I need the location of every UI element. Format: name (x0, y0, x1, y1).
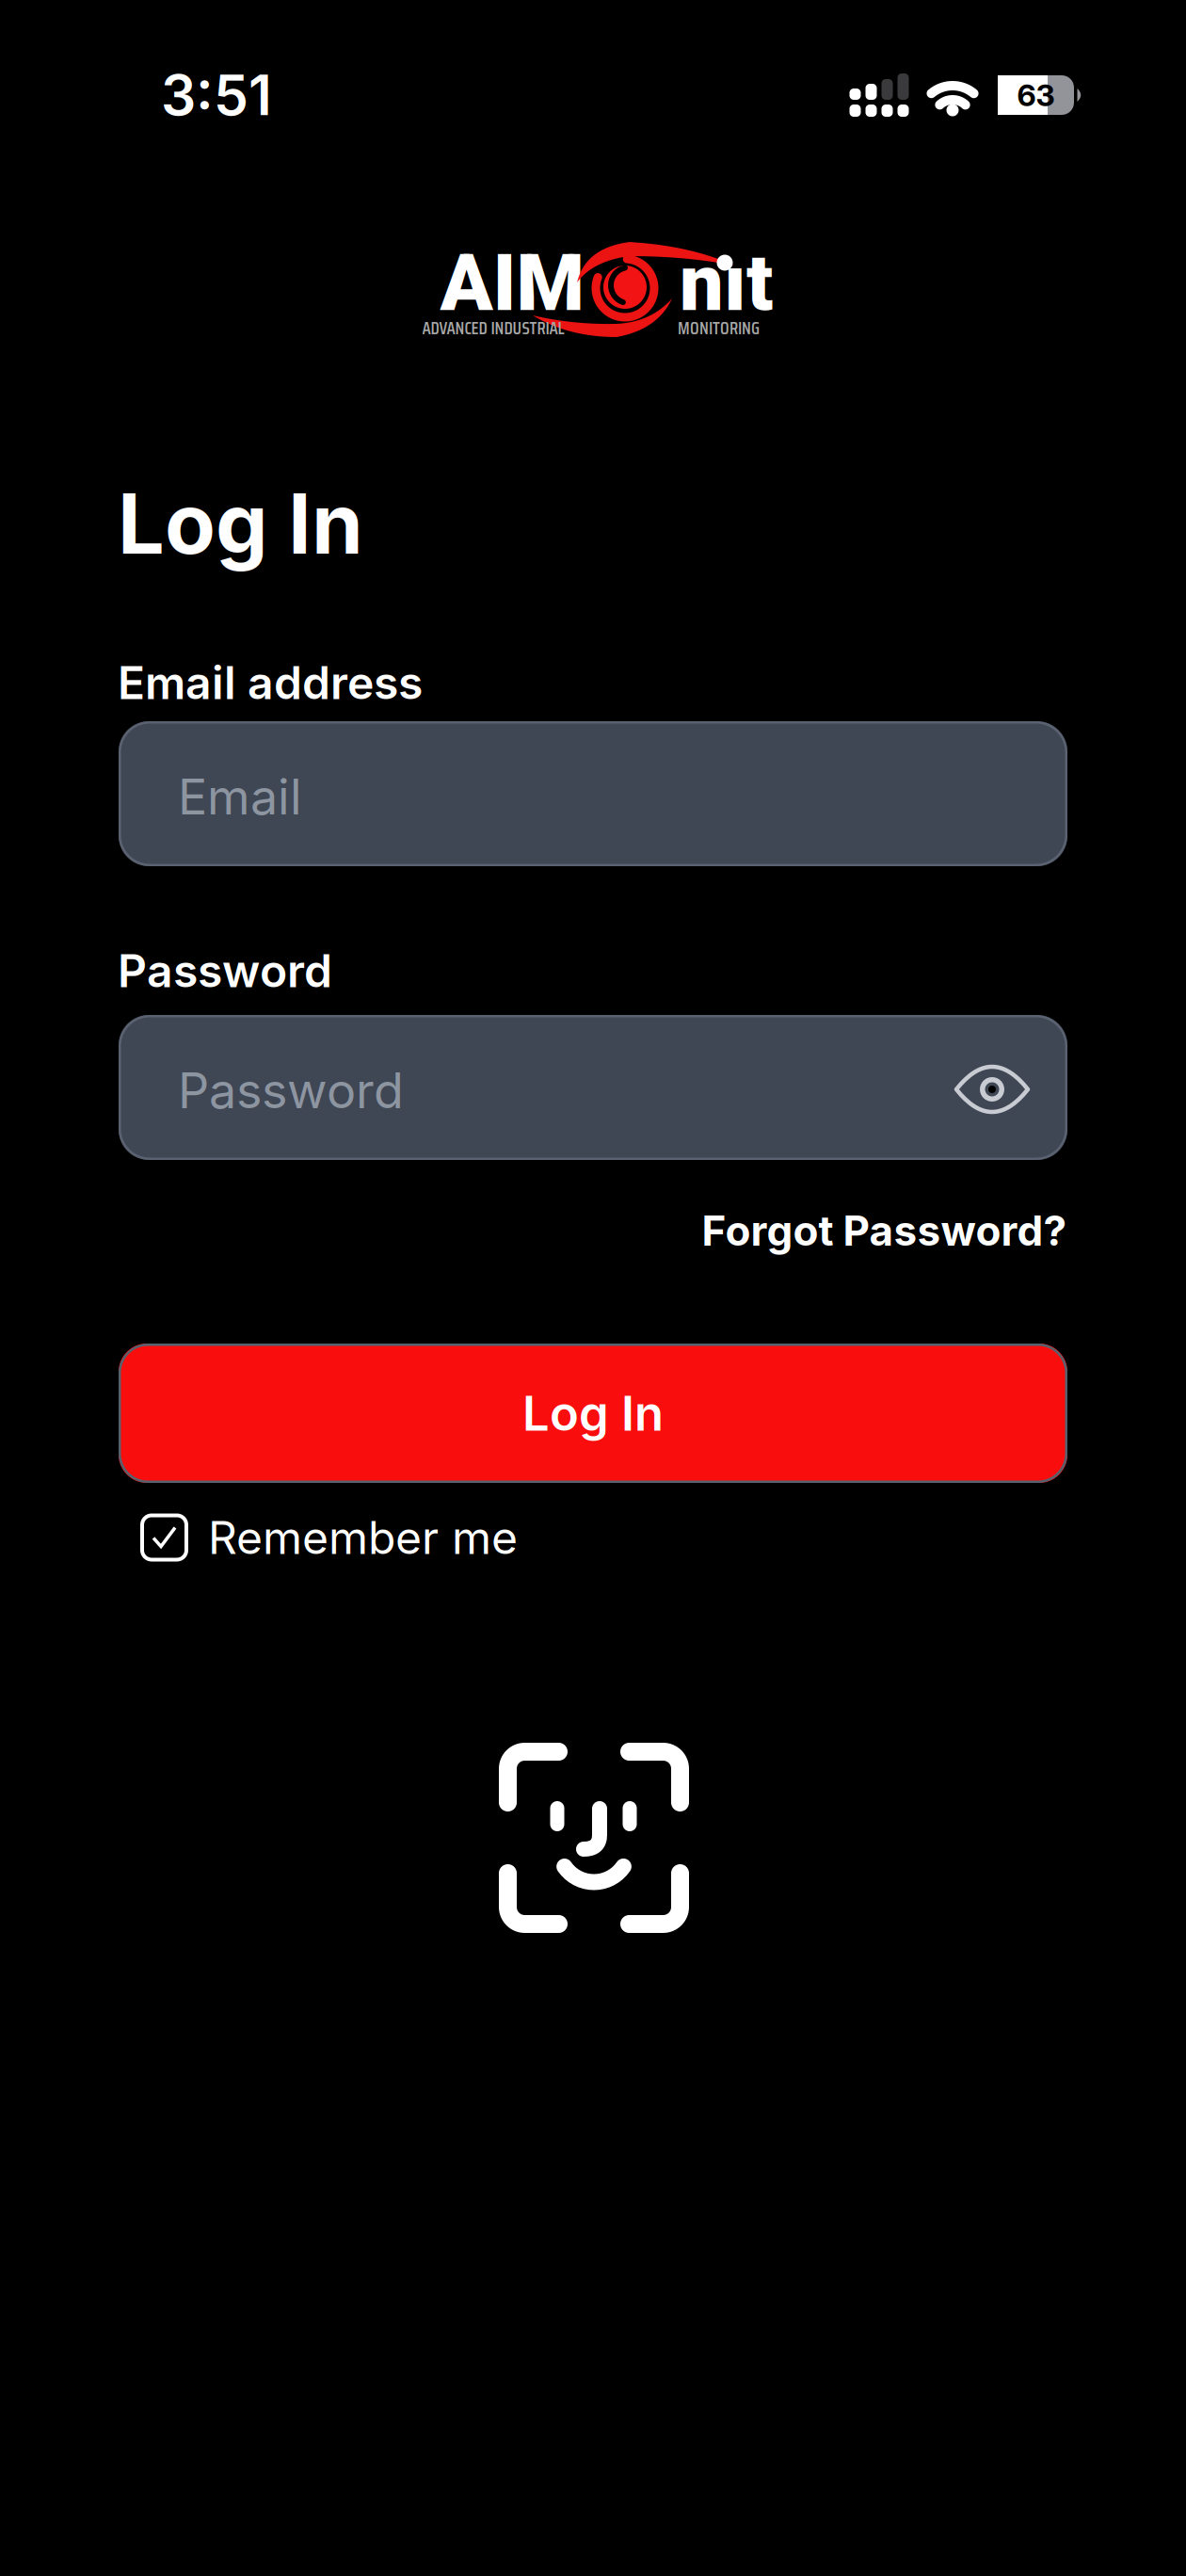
staticText: Remember me (208, 1510, 518, 1565)
staticText: AIM (440, 238, 584, 329)
staticText: ADVANCED INDUSTRIAL (422, 314, 564, 342)
staticText: Forgot Password? (702, 1206, 1067, 1256)
button[interactable]: Remember me (140, 1510, 518, 1565)
button[interactable]: Show password (954, 1064, 1031, 1115)
staticText: Email address (118, 655, 423, 710)
staticText: nıt (680, 238, 773, 329)
button[interactable]: Forgot Password? (702, 1206, 1067, 1256)
staticText: Email (178, 767, 302, 826)
staticText: Log In (118, 473, 363, 574)
staticText: Log In (522, 1384, 664, 1442)
staticText: Password (178, 1061, 404, 1120)
staticText: MONITORING (678, 314, 760, 342)
staticText: 63 (1017, 77, 1055, 113)
button[interactable]: Log In (119, 1344, 1067, 1483)
staticText: Password (118, 943, 332, 998)
staticText: 3:51 (161, 62, 272, 129)
button[interactable]: Log in with Face ID (499, 1743, 689, 1933)
